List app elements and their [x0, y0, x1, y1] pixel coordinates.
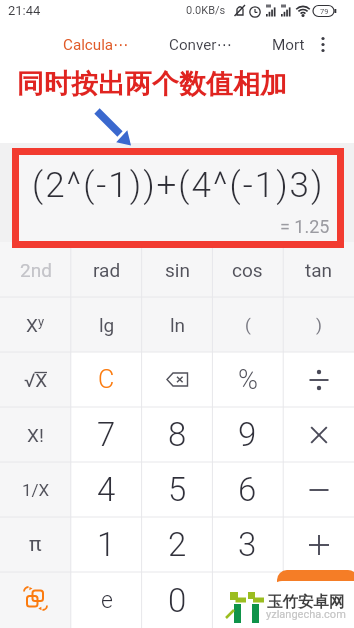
staticText: lg	[99, 314, 115, 336]
staticText: tan	[305, 259, 333, 281]
staticText: 1/X	[22, 480, 50, 500]
staticText: √X	[24, 369, 48, 391]
staticText: yzlangecha.com	[266, 608, 346, 621]
staticText: 1	[97, 525, 116, 564]
staticText: rad	[93, 259, 121, 281]
staticText: Mort	[272, 36, 305, 54]
button[interactable]: 0	[142, 572, 213, 628]
staticText: cos	[232, 259, 263, 281]
button[interactable]	[283, 407, 354, 462]
staticText: 4	[97, 470, 116, 509]
button[interactable]	[0, 572, 71, 628]
staticText: 21:44	[8, 3, 41, 18]
button[interactable]: 5	[142, 462, 213, 517]
button[interactable]: tan	[283, 242, 354, 297]
staticText: 2nd	[20, 259, 52, 281]
staticText: )	[316, 315, 322, 335]
button[interactable]: √X	[0, 352, 71, 407]
staticText: 5	[168, 470, 187, 509]
staticText: ln	[170, 314, 186, 336]
staticText: Xy	[26, 314, 45, 336]
staticText: Calcula⋯	[63, 36, 129, 54]
staticText: 8	[168, 415, 187, 454]
staticText: e	[101, 587, 113, 614]
button[interactable]: Conver⋯	[160, 33, 240, 57]
staticText: 79	[320, 7, 329, 16]
staticText: 6	[238, 470, 257, 509]
staticText: X!	[27, 424, 44, 446]
staticText: C	[98, 365, 115, 394]
button[interactable]: 2nd	[0, 242, 71, 297]
button[interactable]: Mort	[262, 33, 314, 57]
staticText: 9	[238, 415, 257, 454]
button[interactable]: ln	[142, 297, 213, 352]
button[interactable]: 7	[71, 407, 142, 462]
button[interactable]: π	[0, 517, 71, 572]
staticText: sin	[165, 259, 190, 281]
button[interactable]: 3	[212, 517, 283, 572]
button[interactable]	[277, 570, 354, 628]
button[interactable]	[283, 352, 354, 407]
button[interactable]: 9	[212, 407, 283, 462]
button[interactable]	[318, 36, 328, 54]
staticText: 玉竹安卓网	[267, 592, 345, 612]
staticText: Conver⋯	[169, 36, 232, 54]
button[interactable]: rad	[71, 242, 142, 297]
button[interactable]: 6	[212, 462, 283, 517]
button[interactable]: X!	[0, 407, 71, 462]
button[interactable]: Xy	[0, 297, 71, 352]
staticText: %	[238, 364, 258, 396]
button[interactable]: 8	[142, 407, 213, 462]
staticText: (	[245, 315, 251, 335]
button[interactable]: (	[212, 297, 283, 352]
staticText: = 1.25	[280, 216, 330, 237]
staticText: (2^(-1))+(4^(-1)3)	[32, 165, 325, 206]
button[interactable]: e	[71, 572, 142, 628]
staticText: 同时按出两个数值相加	[17, 67, 287, 101]
button[interactable]: C	[71, 352, 142, 407]
staticText: 0.0KB/s	[186, 4, 226, 17]
button[interactable]: 1	[71, 517, 142, 572]
staticText: 7	[97, 415, 116, 454]
button[interactable]: lg	[71, 297, 142, 352]
button[interactable]	[283, 462, 354, 517]
button[interactable]: cos	[212, 242, 283, 297]
staticText: 2	[168, 525, 187, 564]
button[interactable]	[283, 517, 354, 572]
button[interactable]: %	[212, 352, 283, 407]
button[interactable]: sin	[142, 242, 213, 297]
button[interactable]	[142, 352, 213, 407]
button[interactable]: )	[283, 297, 354, 352]
button[interactable]: 4	[71, 462, 142, 517]
button[interactable]: 1/X	[0, 462, 71, 517]
staticText: 3	[238, 525, 257, 564]
staticText: π	[29, 532, 42, 557]
staticText: 0	[168, 581, 187, 620]
button[interactable]: 2	[142, 517, 213, 572]
button[interactable]: Calcula⋯	[56, 33, 136, 57]
